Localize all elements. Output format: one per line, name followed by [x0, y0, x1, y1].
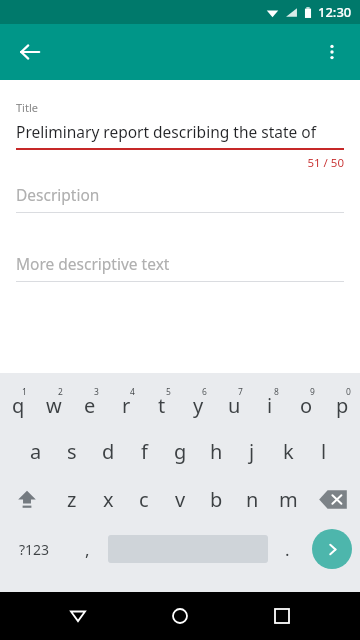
- staticText: q: [12, 392, 25, 419]
- button[interactable]: 6: [180, 379, 216, 427]
- button[interactable]: 4: [108, 379, 144, 427]
- staticText: f: [141, 438, 148, 465]
- button[interactable]: z: [54, 475, 90, 523]
- staticText: n: [246, 486, 259, 513]
- button[interactable]: .: [270, 523, 304, 575]
- staticText: b: [210, 486, 223, 513]
- button[interactable]: 1: [0, 379, 36, 427]
- staticText: .: [285, 538, 290, 561]
- staticText: a: [30, 438, 42, 465]
- staticText: 9: [310, 386, 315, 398]
- staticText: o: [300, 392, 313, 419]
- staticText: 51 / 50: [16, 155, 344, 171]
- staticText: p: [336, 392, 349, 419]
- staticText: 6: [202, 386, 207, 398]
- button[interactable]: n: [234, 475, 270, 523]
- button[interactable]: 8: [252, 379, 288, 427]
- staticText: h: [210, 438, 223, 465]
- staticText: Title: [16, 100, 38, 115]
- button[interactable]: 9: [288, 379, 324, 427]
- button[interactable]: 3: [72, 379, 108, 427]
- staticText: 5: [166, 386, 171, 398]
- staticText: 4: [130, 386, 135, 398]
- staticText: 3: [94, 386, 99, 398]
- staticText: Description: [16, 184, 100, 205]
- staticText: x: [103, 486, 114, 513]
- button[interactable]: g: [162, 427, 198, 475]
- staticText: 0: [346, 386, 351, 398]
- button[interactable]: m: [270, 475, 306, 523]
- button[interactable]: Description: [16, 184, 344, 213]
- staticText: j: [249, 438, 255, 465]
- button[interactable]: Title: [16, 100, 344, 171]
- button[interactable]: More options: [310, 30, 354, 74]
- staticText: i: [267, 392, 273, 419]
- staticText: w: [46, 392, 62, 419]
- button[interactable]: Back: [8, 30, 52, 74]
- button[interactable]: b: [198, 475, 234, 523]
- button[interactable]: 5: [144, 379, 180, 427]
- staticText: ,: [85, 538, 90, 561]
- staticText: t: [158, 392, 166, 419]
- staticText: k: [283, 438, 294, 465]
- button[interactable]: Home: [156, 592, 204, 640]
- button[interactable]: Enter: [304, 523, 360, 575]
- button[interactable]: l: [306, 427, 342, 475]
- button[interactable]: d: [90, 427, 126, 475]
- staticText: s: [67, 438, 77, 465]
- staticText: 1: [22, 386, 27, 398]
- staticText: 8: [274, 386, 279, 398]
- staticText: y: [193, 392, 204, 419]
- button[interactable]: a: [18, 427, 54, 475]
- button[interactable]: Shift: [0, 475, 54, 523]
- button[interactable]: ,: [68, 523, 106, 575]
- button[interactable]: x: [90, 475, 126, 523]
- staticText: 7: [238, 386, 243, 398]
- staticText: 12:30: [318, 3, 352, 21]
- staticText: r: [122, 392, 131, 419]
- button[interactable]: More descriptive text: [16, 253, 344, 282]
- staticText: Preliminary report describing the state …: [16, 121, 344, 142]
- staticText: g: [174, 438, 187, 465]
- button[interactable]: c: [126, 475, 162, 523]
- staticText: l: [321, 438, 327, 465]
- staticText: z: [67, 486, 77, 513]
- button[interactable]: Back: [54, 592, 102, 640]
- button[interactable]: 0: [324, 379, 360, 427]
- button[interactable]: Recents: [258, 592, 306, 640]
- staticText: u: [228, 392, 241, 419]
- button[interactable]: f: [126, 427, 162, 475]
- staticText: v: [175, 486, 186, 513]
- button[interactable]: v: [162, 475, 198, 523]
- button[interactable]: 7: [216, 379, 252, 427]
- staticText: m: [279, 486, 298, 513]
- staticText: 2: [58, 386, 63, 398]
- staticText: e: [84, 392, 96, 419]
- staticText: d: [102, 438, 115, 465]
- staticText: c: [139, 486, 149, 513]
- button[interactable]: s: [54, 427, 90, 475]
- button[interactable]: 2: [36, 379, 72, 427]
- button[interactable]: Backspace: [306, 475, 360, 523]
- button[interactable]: j: [234, 427, 270, 475]
- button[interactable]: ?123: [0, 523, 68, 575]
- staticText: More descriptive text: [16, 253, 170, 274]
- staticText: ?123: [19, 540, 50, 559]
- button[interactable]: k: [270, 427, 306, 475]
- button[interactable]: h: [198, 427, 234, 475]
